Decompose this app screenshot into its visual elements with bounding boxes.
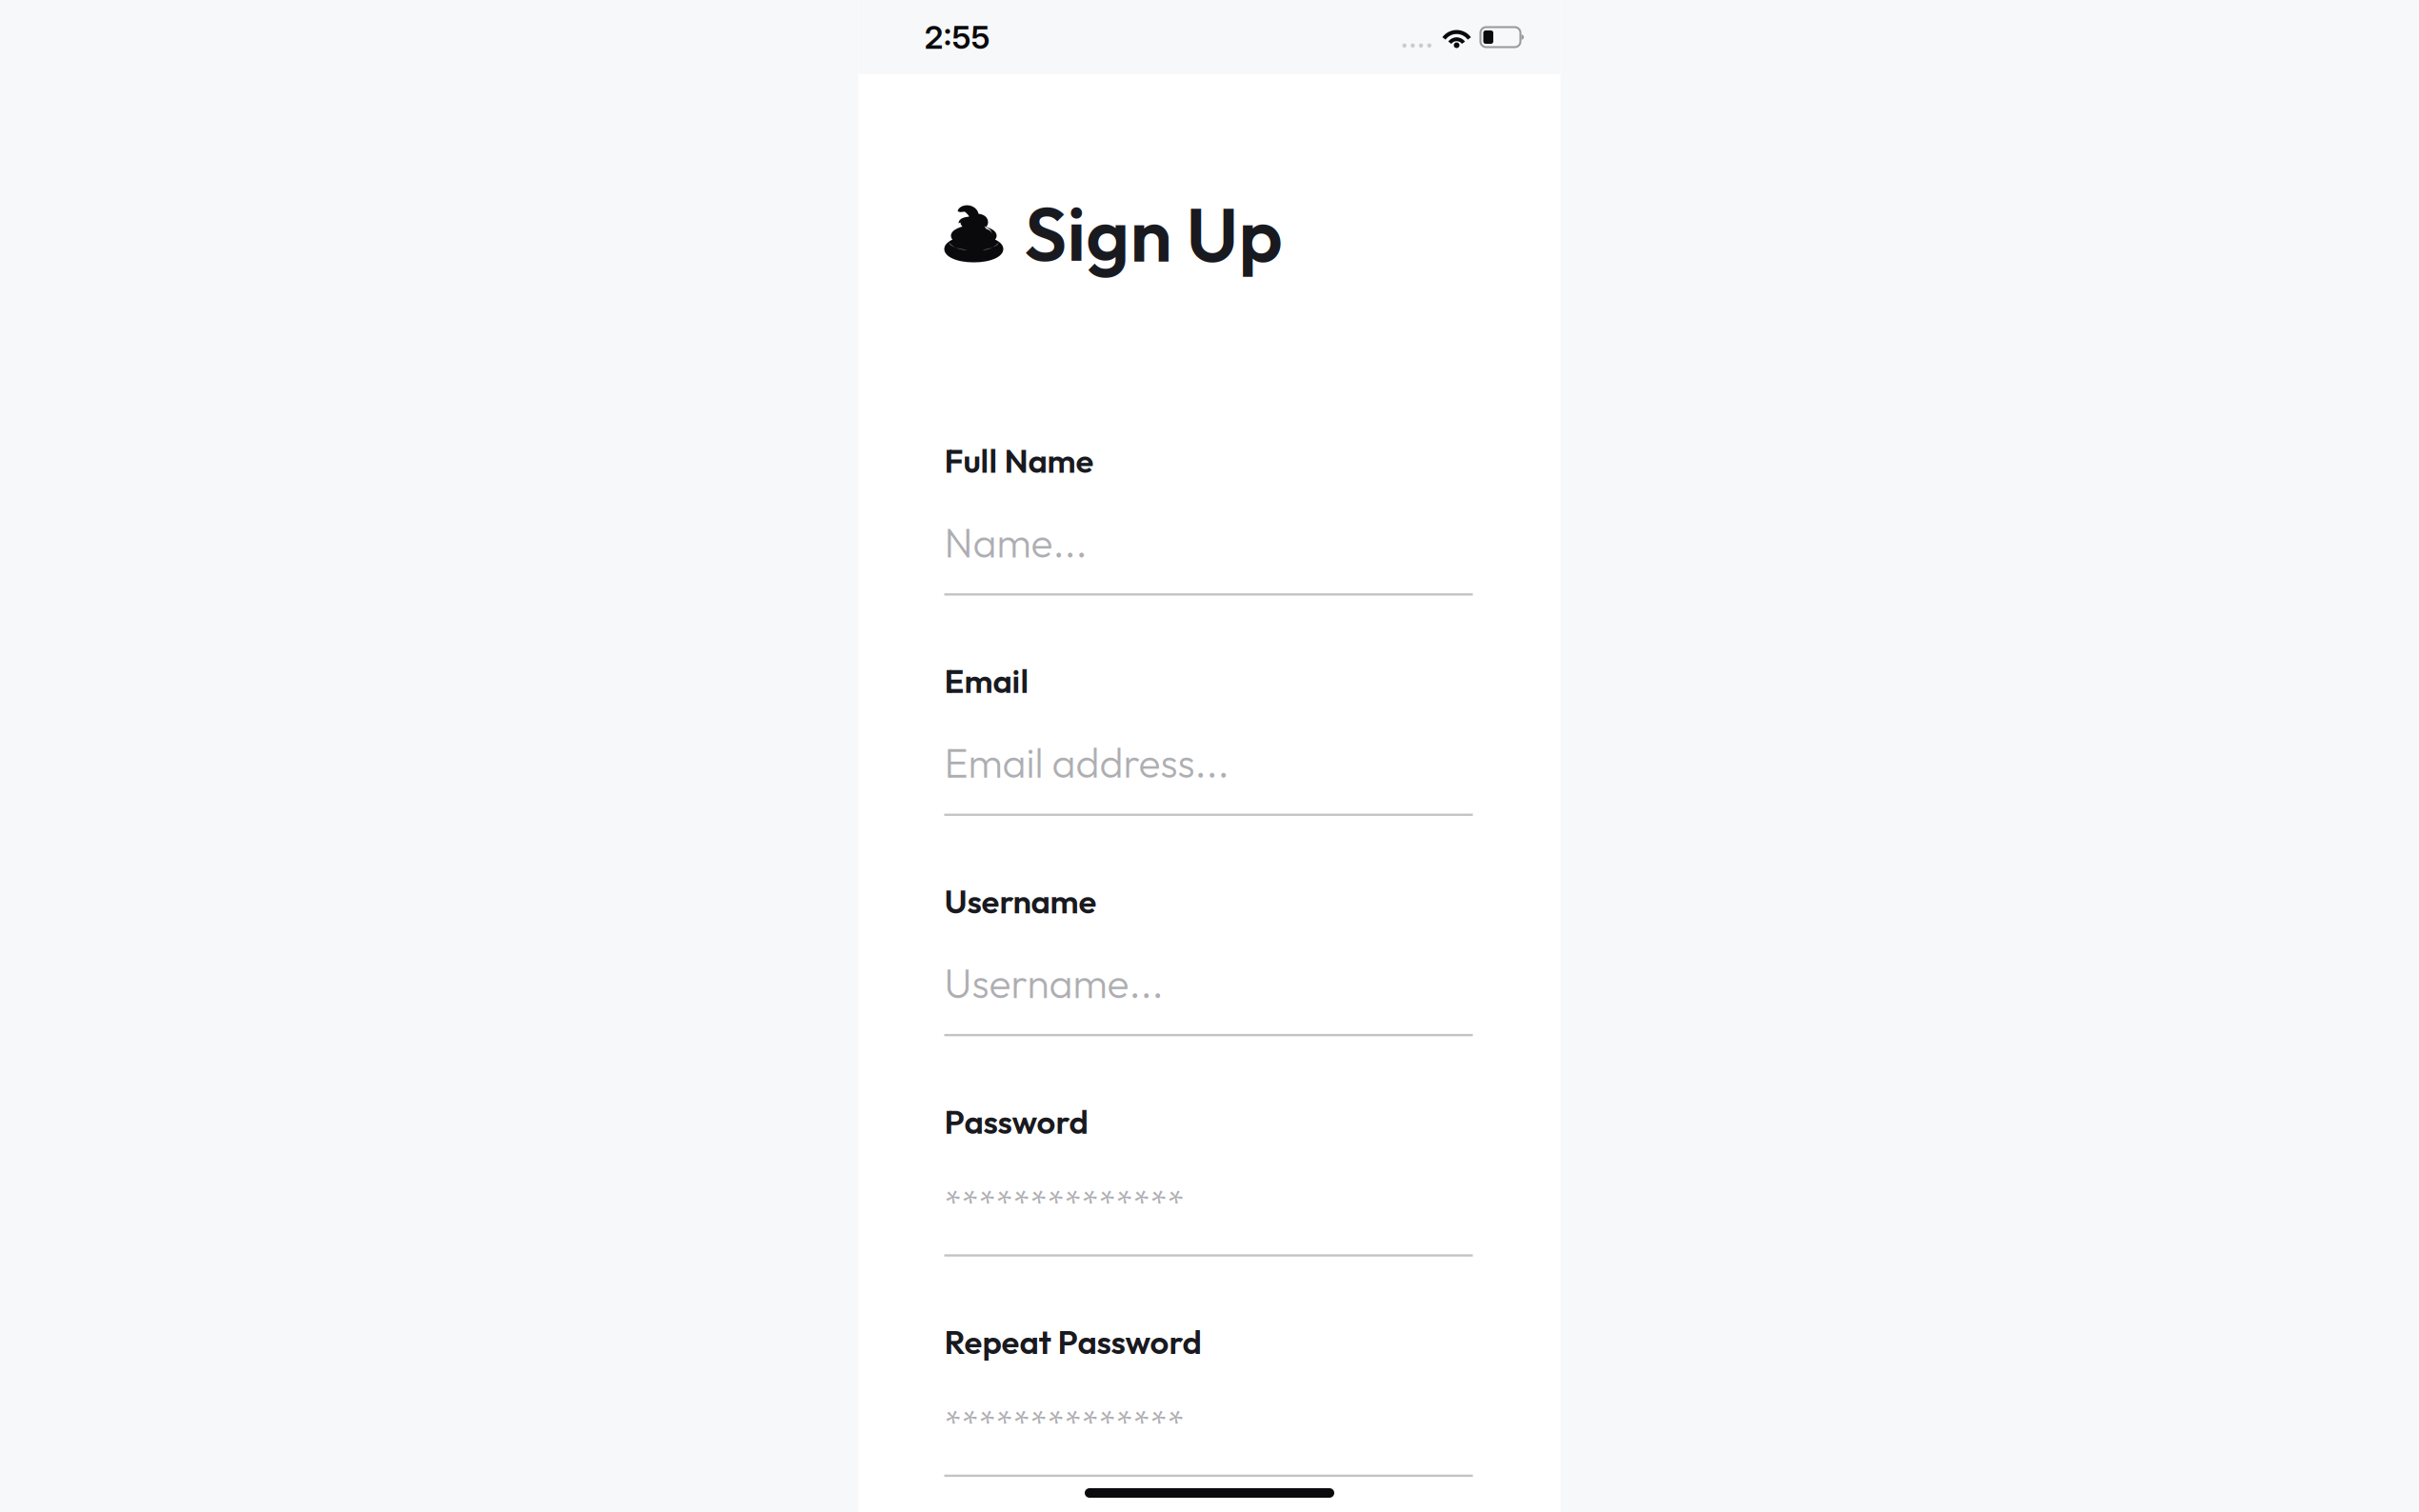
staticText: Sign Up bbox=[1024, 187, 1282, 281]
staticText: Full Name bbox=[944, 440, 1094, 481]
button[interactable]: Repeat Password bbox=[944, 1321, 1473, 1477]
staticText: Password bbox=[944, 1101, 1088, 1142]
button[interactable]: Password bbox=[944, 1101, 1473, 1257]
button[interactable]: Full Name bbox=[944, 440, 1473, 596]
staticText: 2:55 bbox=[924, 18, 990, 56]
button[interactable]: Username bbox=[944, 881, 1473, 1036]
staticText: Name... bbox=[944, 517, 1087, 568]
staticText: Username... bbox=[944, 957, 1163, 1009]
staticText: ************** bbox=[944, 1181, 1184, 1226]
staticText: Email bbox=[944, 660, 1029, 702]
staticText: Repeat Password bbox=[944, 1321, 1201, 1363]
staticText: Email address... bbox=[944, 737, 1229, 788]
staticText: ************** bbox=[944, 1401, 1184, 1446]
button[interactable]: Email bbox=[944, 660, 1473, 816]
staticText: Username bbox=[944, 880, 1097, 922]
